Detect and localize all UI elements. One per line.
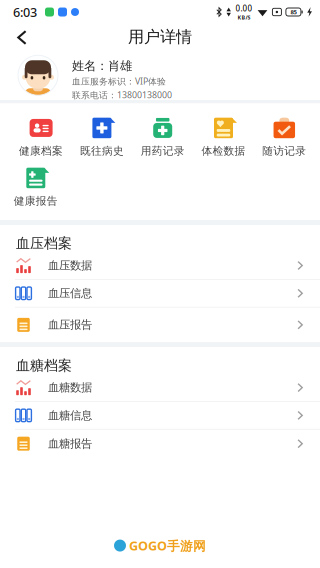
button[interactable]: 健康档案 (11, 112, 71, 162)
staticText: 血压服务标识：VIP体验 (72, 75, 166, 87)
staticText: GOGO手游网 (129, 537, 206, 554)
button[interactable]: 血糖报告 (0, 430, 320, 458)
staticText: 血压信息 (48, 286, 92, 300)
button[interactable]: 血压报告 (0, 308, 320, 342)
staticText: 健康档案 (19, 144, 63, 157)
button[interactable]: 血压数据 (0, 252, 320, 280)
staticText: 血压报告 (48, 318, 92, 332)
button[interactable]: 用药记录 (132, 112, 193, 162)
staticText: 血糖数据 (48, 381, 92, 394)
staticText: 85 (290, 8, 296, 16)
staticText: 姓名：肖雄 (72, 58, 132, 73)
button[interactable]: 血糖数据 (0, 374, 320, 402)
staticText: 6:03 (13, 4, 37, 20)
button[interactable]: Back (0, 24, 39, 48)
staticText: 随访记录 (262, 144, 306, 157)
staticText: 血糖信息 (48, 408, 92, 422)
staticText: 联系电话：13800138000 (72, 89, 172, 101)
staticText: 血压数据 (48, 258, 92, 272)
button[interactable]: 既往病史 (71, 112, 132, 162)
staticText: 0.00 (236, 3, 253, 14)
staticText: 血压档案 (16, 235, 72, 252)
staticText: 体检数据 (201, 144, 245, 157)
button[interactable]: 随访记录 (254, 112, 315, 162)
staticText: 健康报告 (14, 194, 58, 207)
staticText: 血糖档案 (16, 357, 72, 374)
staticText: 既往病史 (80, 144, 124, 157)
staticText: 血糖报告 (48, 437, 92, 451)
button[interactable]: 健康报告 (5, 162, 66, 212)
staticText: 用户详情 (128, 27, 192, 47)
button[interactable]: 血压信息 (0, 280, 320, 308)
button[interactable]: 血糖信息 (0, 402, 320, 430)
staticText: 用药记录 (141, 144, 185, 157)
staticText: KB/S (238, 14, 251, 21)
button[interactable]: 体检数据 (193, 112, 254, 162)
